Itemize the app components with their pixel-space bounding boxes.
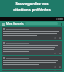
button[interactable]: Delete	[58, 37, 61, 39]
button[interactable]: Share	[2, 27, 62, 40]
button[interactable]: Share	[53, 37, 56, 39]
button[interactable]: Share	[2, 41, 62, 55]
button[interactable]: Menu	[1, 22, 5, 26]
button[interactable]: Share	[53, 53, 56, 54]
button[interactable]: Delete	[58, 66, 61, 68]
button[interactable]: Share	[2, 56, 62, 69]
staticText: Sauvegardez vos	[15, 1, 49, 6]
button[interactable]: More options	[59, 22, 63, 26]
button[interactable]: Delete	[58, 53, 61, 54]
button[interactable]: Mes favoris	[6, 22, 24, 26]
staticText: citations préférées	[13, 7, 51, 12]
button[interactable]: Share	[53, 66, 56, 68]
